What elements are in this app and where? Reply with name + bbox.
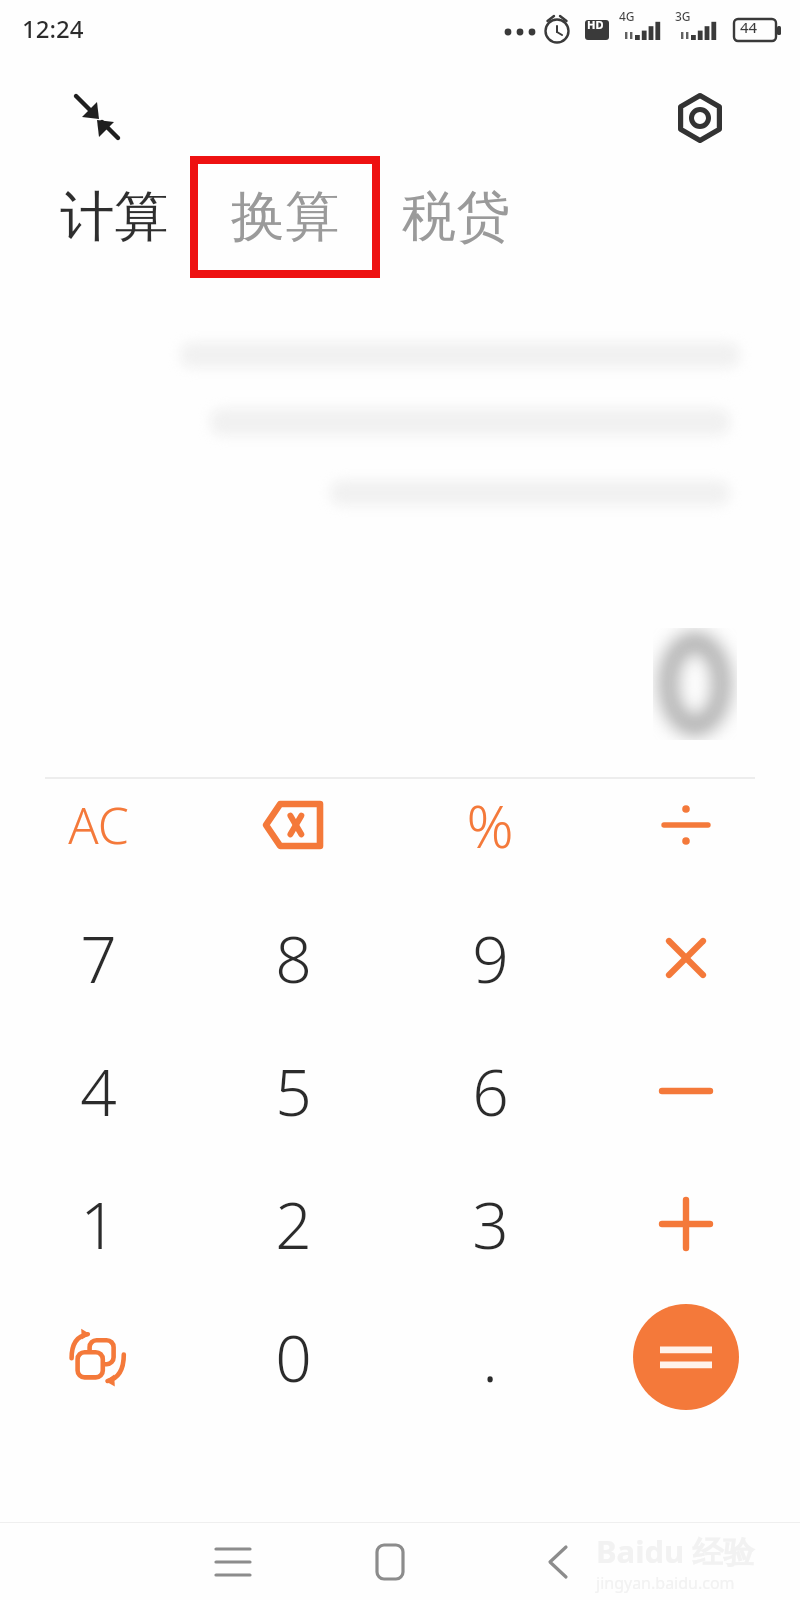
button[interactable]: Back xyxy=(518,1534,598,1590)
button[interactable]: Settings xyxy=(672,90,728,146)
staticText: 0 xyxy=(275,1314,312,1401)
button[interactable]: 税贷 xyxy=(386,158,526,276)
button[interactable]: 1 xyxy=(13,1159,183,1289)
staticText: AC xyxy=(68,791,129,859)
staticText: Baidu 经验 xyxy=(596,1530,755,1572)
staticText: 4 xyxy=(80,1048,117,1135)
button[interactable]: Minus xyxy=(601,1026,771,1156)
button[interactable]: 9 xyxy=(405,893,575,1023)
staticText: 3 xyxy=(472,1181,509,1268)
button[interactable]: Plus xyxy=(601,1159,771,1289)
staticText: 1 xyxy=(80,1181,117,1268)
staticText: 税贷 xyxy=(402,183,510,251)
button[interactable]: 3 xyxy=(405,1159,575,1289)
button[interactable]: 计算 xyxy=(44,158,184,276)
staticText: 44 xyxy=(740,17,758,37)
button[interactable]: Unit conversion xyxy=(13,1292,183,1422)
staticText: 7 xyxy=(80,915,117,1002)
button[interactable]: . xyxy=(405,1292,575,1422)
button[interactable]: Backspace xyxy=(208,760,378,890)
button[interactable]: Divide xyxy=(601,760,771,890)
staticText: jingyan.baidu.com xyxy=(596,1572,735,1594)
staticText: 5 xyxy=(275,1048,312,1135)
button[interactable]: 换算 xyxy=(190,158,380,276)
staticText: . xyxy=(482,1314,498,1401)
staticText: 12:24 xyxy=(22,12,84,45)
staticText: 8 xyxy=(275,915,312,1002)
staticText: 4G xyxy=(619,8,635,24)
button[interactable]: % xyxy=(405,760,575,890)
button[interactable]: Collapse xyxy=(54,82,132,148)
staticText: % xyxy=(466,786,514,865)
button[interactable]: Multiply xyxy=(601,893,771,1023)
staticText: HD xyxy=(587,17,604,32)
button[interactable]: Equals xyxy=(601,1292,771,1422)
staticText: 计算 xyxy=(60,183,168,251)
staticText: 3G xyxy=(675,8,691,24)
button[interactable]: 0 xyxy=(208,1292,378,1422)
button[interactable]: Menu xyxy=(193,1534,273,1590)
staticText: 9 xyxy=(472,915,509,1002)
button[interactable]: AC xyxy=(13,760,183,890)
button[interactable]: Home xyxy=(350,1534,430,1590)
button[interactable]: 8 xyxy=(208,893,378,1023)
button[interactable]: 5 xyxy=(208,1026,378,1156)
button[interactable]: 4 xyxy=(13,1026,183,1156)
button[interactable]: 7 xyxy=(13,893,183,1023)
staticText: 换算 xyxy=(231,183,339,251)
staticText: 6 xyxy=(472,1048,509,1135)
button[interactable]: 2 xyxy=(208,1159,378,1289)
staticText: 2 xyxy=(275,1181,312,1268)
button[interactable]: 6 xyxy=(405,1026,575,1156)
